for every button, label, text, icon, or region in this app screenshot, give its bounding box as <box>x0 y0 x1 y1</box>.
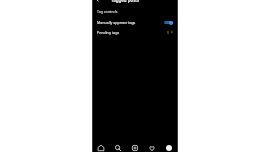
button[interactable]: Home <box>93 142 109 152</box>
button[interactable]: Profile <box>160 142 177 152</box>
staticText: Tagged posts <box>111 0 140 3</box>
button[interactable]: Search <box>109 142 126 152</box>
button[interactable]: Manually approve tags <box>92 17 178 27</box>
button[interactable]: Pending tags <box>92 27 178 37</box>
button[interactable]: Create <box>126 142 143 152</box>
staticText: Pending tags <box>97 30 120 35</box>
button[interactable]: Back <box>93 0 102 4</box>
button[interactable]: Activity <box>143 142 160 152</box>
staticText: Tag controls <box>97 9 118 14</box>
staticText: Manually approve tags <box>97 20 136 25</box>
staticText: 0 <box>167 30 169 35</box>
